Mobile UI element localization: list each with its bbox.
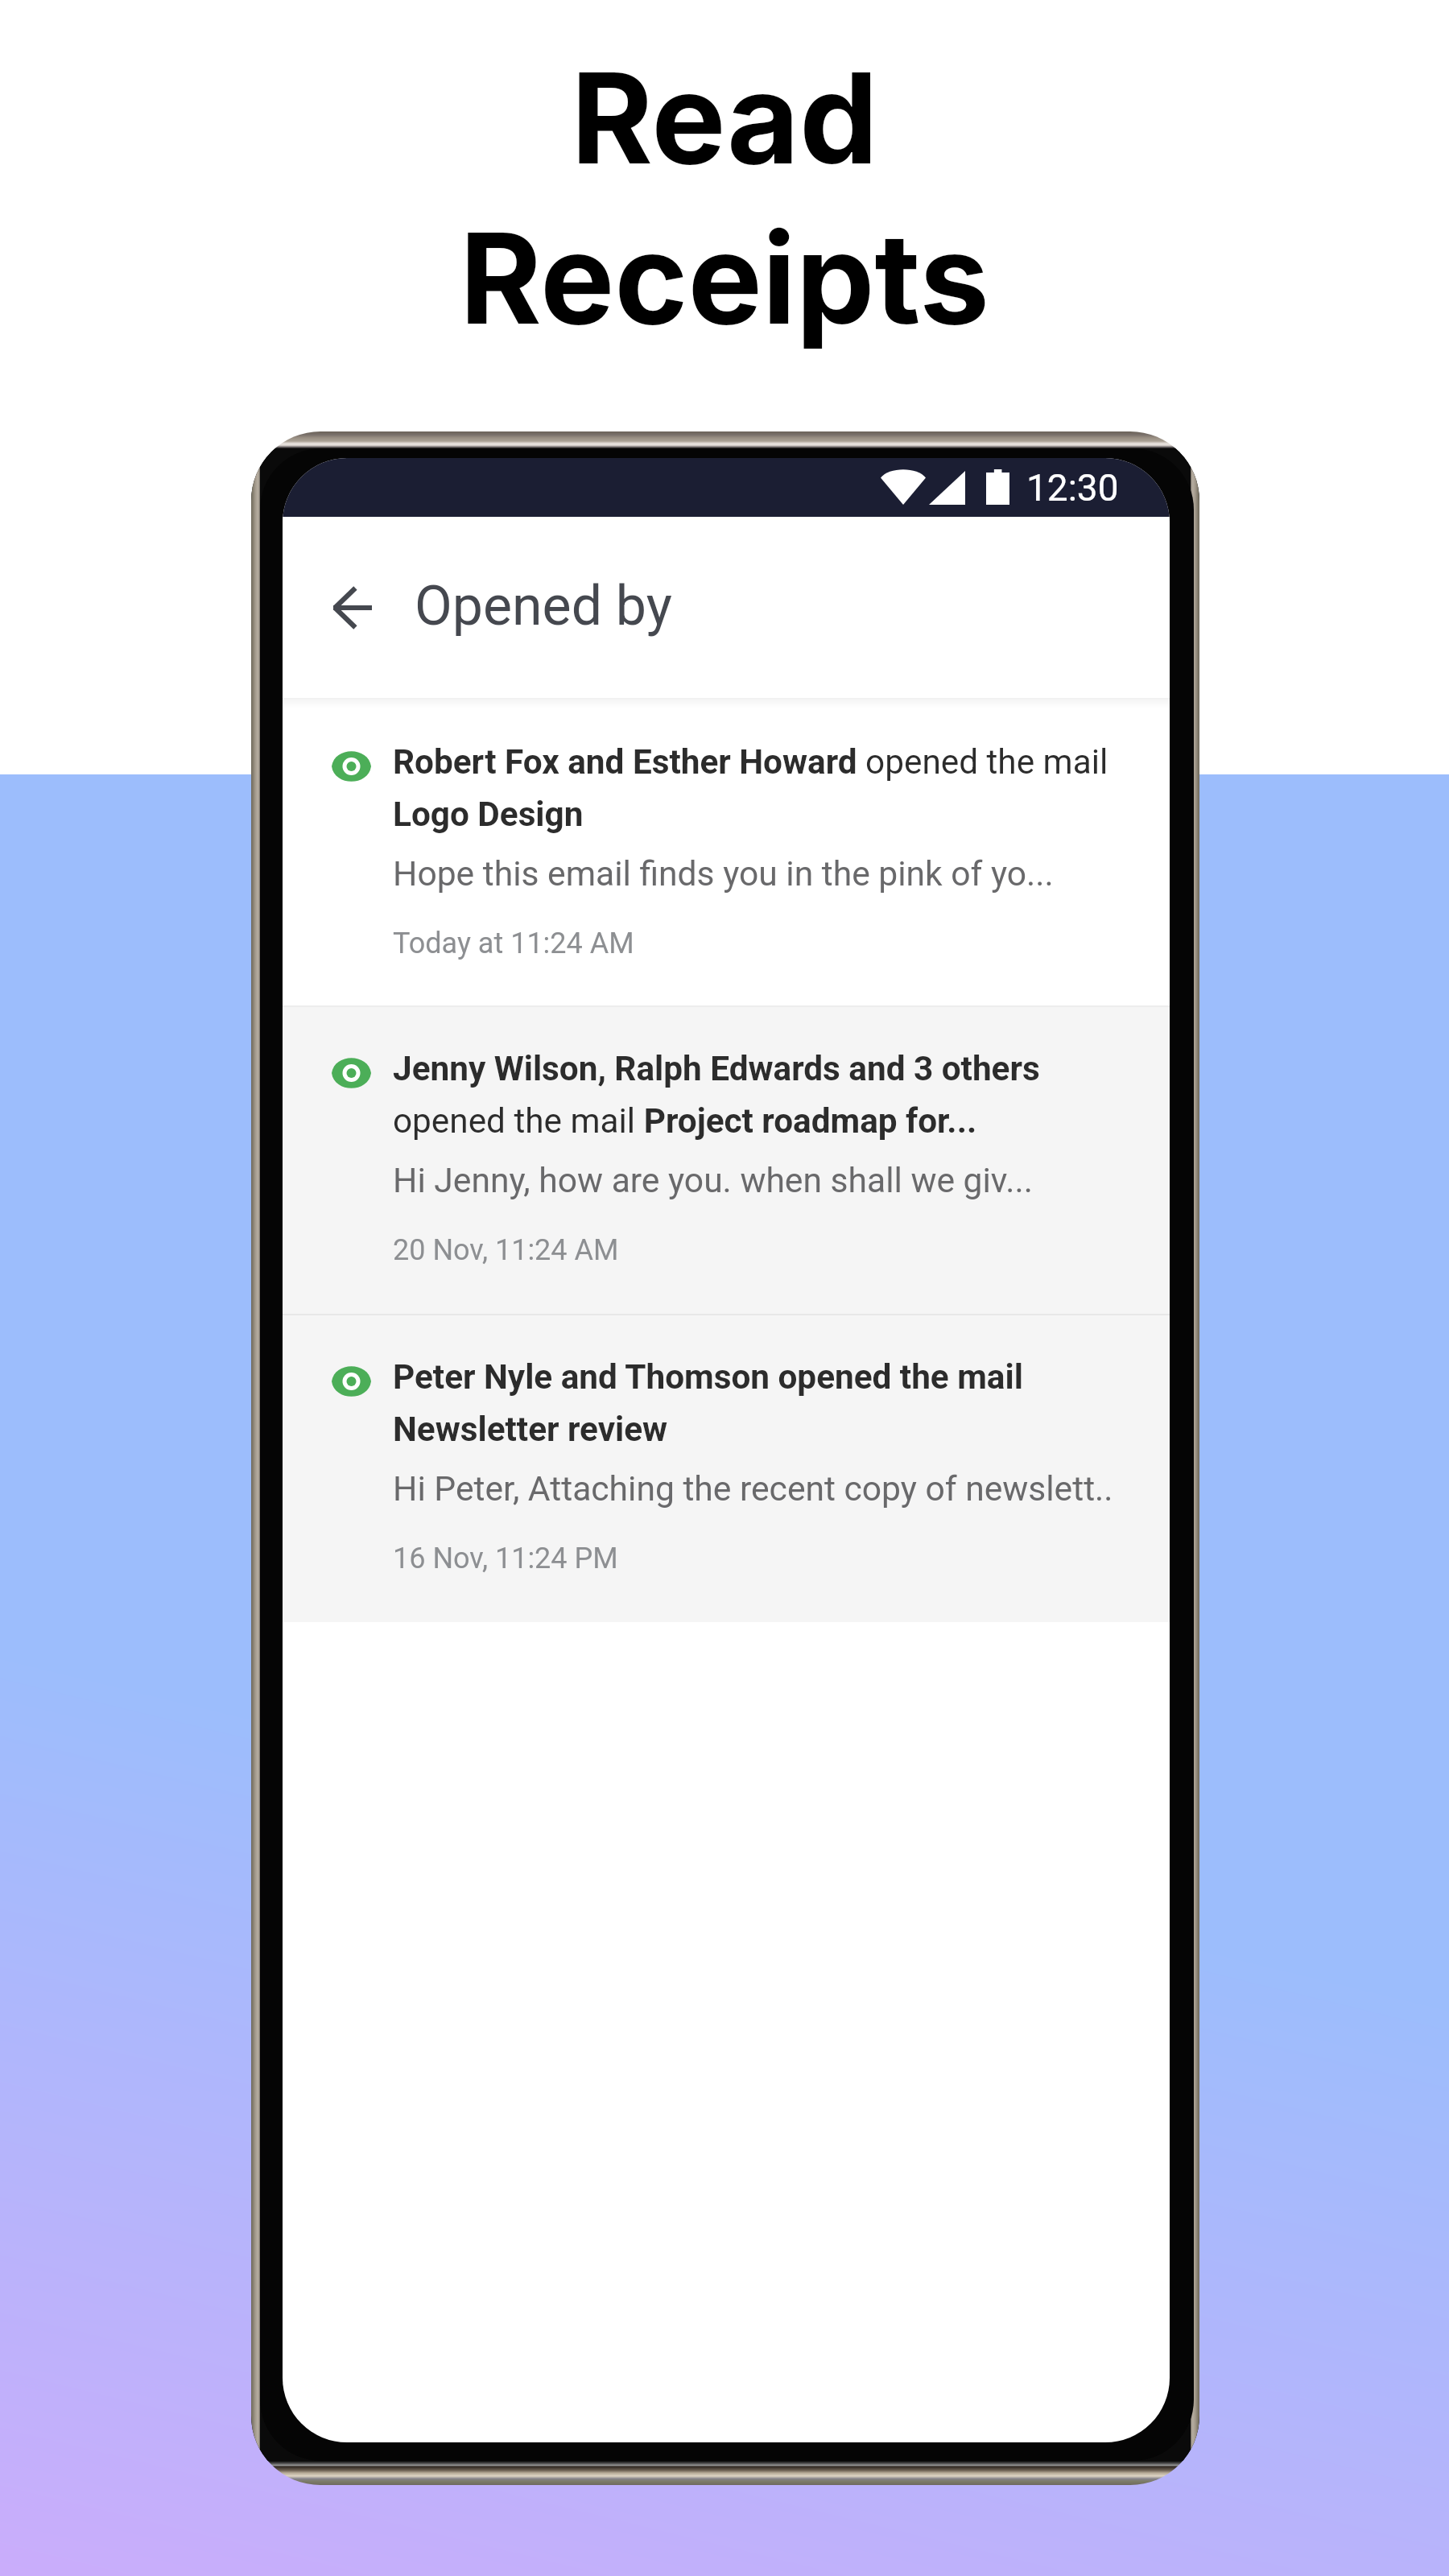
staticText: Read Receipts	[460, 43, 989, 353]
staticText: 20 Nov, 11:24 AM	[393, 1233, 619, 1267]
staticText: Hi Peter, Attaching the recent copy of n…	[393, 1468, 1113, 1509]
staticText: Jenny Wilson, Ralph Edwards and 3 others…	[393, 1049, 1141, 1141]
staticText: Opened by	[415, 574, 672, 638]
staticText: Hope this email finds you in the pink of…	[393, 853, 1054, 894]
staticText: Today at 11:24 AM	[393, 927, 634, 960]
button[interactable]: Jenny Wilson, Ralph Edwards and 3 others…	[283, 1007, 1170, 1314]
button[interactable]: Back	[310, 566, 394, 650]
staticText: 12:30	[1026, 466, 1119, 510]
staticText: Robert Fox and Esther Howard opened the …	[393, 742, 1141, 834]
staticText: Hi Jenny, how are you. when shall we giv…	[393, 1160, 1033, 1200]
staticText: Peter Nyle and Thomson opened the mail N…	[393, 1357, 1141, 1449]
button[interactable]: Peter Nyle and Thomson opened the mail N…	[283, 1315, 1170, 1622]
staticText: 16 Nov, 11:24 PM	[393, 1542, 618, 1575]
button[interactable]: Robert Fox and Esther Howard opened the …	[283, 698, 1170, 1005]
